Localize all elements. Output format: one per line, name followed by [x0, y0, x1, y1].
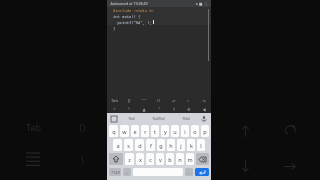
button[interactable]: Tab: [21, 118, 45, 136]
button[interactable]: ◀: [196, 105, 211, 113]
button[interactable]: b: [166, 153, 174, 165]
button[interactable]: z: [125, 153, 134, 165]
staticText: ▸ ■ ⋮: [196, 1, 208, 6]
staticText: q: [112, 128, 116, 135]
button[interactable]: ▲: [136, 105, 151, 113]
staticText: x: [139, 156, 142, 163]
button[interactable]: Menu: [22, 148, 44, 170]
staticText: #include <stdio.h>: [113, 8, 155, 13]
staticText: w: [122, 128, 127, 135]
staticText: (): [157, 98, 160, 104]
button[interactable]: ⚙: [181, 105, 196, 113]
staticText: s: [127, 142, 130, 149]
button[interactable]: Redo: [278, 118, 302, 142]
staticText: ↶: [172, 99, 176, 104]
staticText: !: [158, 106, 160, 112]
staticText: b: [168, 156, 172, 163]
staticText: p: [203, 128, 207, 135]
button[interactable]: i: [181, 125, 189, 137]
button[interactable]: w: [120, 125, 129, 137]
button[interactable]: !: [151, 105, 166, 113]
staticText: m: [187, 156, 193, 163]
button[interactable]: h: [167, 139, 175, 151]
staticText: v: [159, 156, 162, 163]
button[interactable]: Voice input: [199, 114, 209, 124]
button[interactable]: Shift: [109, 153, 123, 165]
staticText: z: [128, 156, 131, 163]
button[interactable]: x: [136, 153, 144, 165]
staticText: y: [164, 128, 167, 135]
button[interactable]: ↶: [166, 97, 181, 105]
button[interactable]: Down: [233, 154, 257, 178]
staticText: e: [133, 128, 137, 135]
staticText: ,: [126, 169, 128, 176]
staticText: %ld: [182, 116, 190, 122]
staticText: ⌕: [187, 99, 190, 103]
button[interactable]: r: [141, 125, 149, 137]
button[interactable]: f: [146, 139, 155, 151]
button[interactable]: %ld: [172, 113, 199, 124]
button[interactable]: q: [109, 125, 118, 137]
staticText: printf("%d", );: [113, 20, 152, 25]
button[interactable]: Right: [278, 154, 302, 178]
button[interactable]: t: [151, 125, 159, 137]
staticText: l: [200, 142, 202, 149]
button[interactable]: o: [191, 125, 199, 137]
button[interactable]: Up: [233, 118, 257, 142]
button[interactable]: m: [186, 153, 194, 165]
staticText: \: [80, 152, 85, 167]
button[interactable]: d: [135, 139, 144, 151]
button[interactable]: {}: [70, 118, 94, 136]
staticText: g: [159, 142, 163, 149]
button[interactable]: c: [146, 153, 154, 165]
button[interactable]: p: [201, 125, 209, 137]
button[interactable]: Enter: [195, 168, 209, 176]
button[interactable]: e: [131, 125, 139, 137]
staticText: }: [113, 26, 116, 31]
button[interactable]: \: [121, 105, 136, 113]
staticText: "": [142, 98, 146, 104]
button[interactable]: Backspace: [196, 153, 209, 165]
staticText: ⚙: [187, 107, 191, 112]
button[interactable]: %d%d: [145, 113, 172, 124]
button[interactable]: j: [177, 139, 185, 151]
button[interactable]: s: [124, 139, 133, 151]
button[interactable]: ⇧: [166, 105, 181, 113]
staticText: c: [149, 156, 152, 163]
button[interactable]: %d: [118, 113, 145, 124]
button[interactable]: Stickers: [109, 114, 118, 123]
staticText: d: [138, 142, 142, 149]
staticText: Autosaved at 19:28:49: [110, 1, 148, 6]
button[interactable]: u: [171, 125, 179, 137]
staticText: \: [128, 106, 130, 112]
staticText: ?123: [111, 170, 120, 175]
button[interactable]: Symbols: [109, 168, 121, 176]
staticText: r: [144, 128, 147, 135]
button[interactable]: <: [107, 105, 121, 113]
staticText: h: [169, 142, 173, 149]
button[interactable]: {}: [121, 97, 136, 105]
button[interactable]: a: [113, 139, 122, 151]
staticText: %d: [128, 116, 135, 122]
staticText: {}: [127, 98, 131, 104]
button[interactable]: Tab: [107, 97, 121, 105]
button[interactable]: n: [176, 153, 184, 165]
button[interactable]: k: [187, 139, 195, 151]
staticText: n: [178, 156, 182, 163]
button[interactable]: v: [156, 153, 164, 165]
button[interactable]: y: [161, 125, 169, 137]
button[interactable]: "": [136, 97, 151, 105]
button[interactable]: l: [197, 139, 205, 151]
staticText: ◀: [202, 107, 206, 112]
staticText: Tab: [111, 98, 118, 104]
button[interactable]: Period: [185, 168, 193, 176]
staticText: f: [150, 142, 152, 149]
button[interactable]: ⌕: [181, 97, 196, 105]
button[interactable]: g: [157, 139, 165, 151]
button[interactable]: ↷: [196, 97, 211, 105]
button[interactable]: Emoji: [123, 168, 131, 176]
button[interactable]: (): [151, 97, 166, 105]
staticText: i: [184, 128, 186, 135]
